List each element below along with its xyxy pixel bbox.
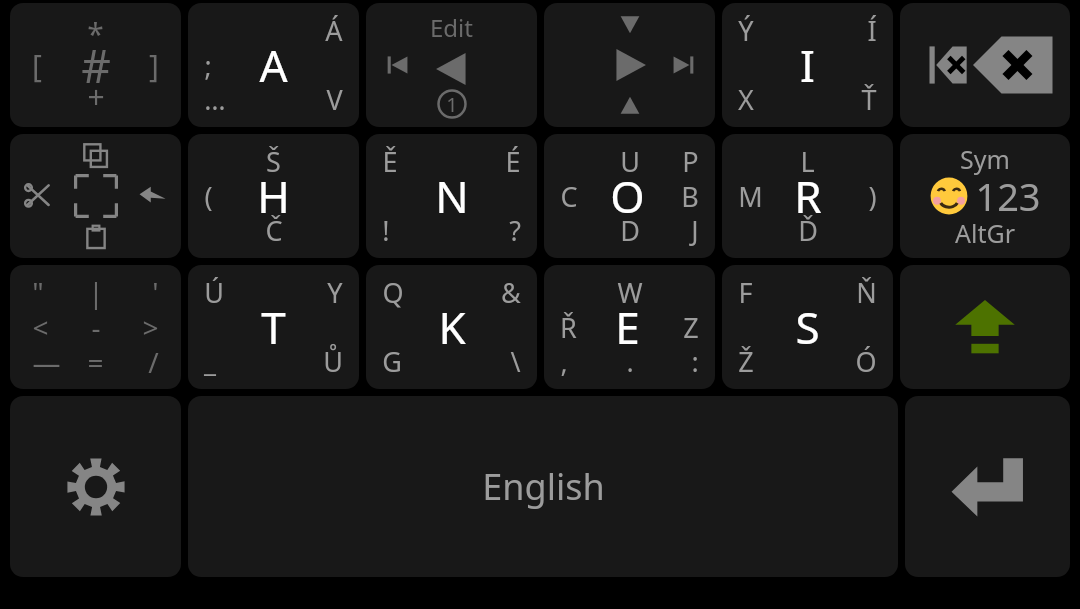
staticText: Ó bbox=[855, 343, 877, 380]
staticText: English bbox=[482, 462, 605, 511]
staticText: N bbox=[435, 166, 469, 226]
staticText: O bbox=[610, 166, 645, 226]
staticText: F bbox=[738, 274, 753, 311]
staticText: V bbox=[326, 81, 343, 118]
staticText: S bbox=[795, 297, 820, 357]
staticText: , bbox=[560, 343, 568, 380]
staticText: : bbox=[691, 343, 699, 380]
staticText: J bbox=[691, 212, 699, 249]
staticText: ] bbox=[149, 45, 159, 86]
button[interactable]: O bbox=[544, 134, 715, 258]
staticText: ' bbox=[152, 273, 159, 311]
staticText: Š bbox=[266, 143, 281, 180]
staticText: Á bbox=[325, 12, 343, 49]
button[interactable]: R bbox=[722, 134, 893, 258]
staticText: > bbox=[142, 308, 159, 346]
button[interactable]: Symbols and numbers bbox=[900, 134, 1070, 258]
staticText: I bbox=[800, 35, 815, 95]
staticText: 1 bbox=[446, 91, 458, 118]
staticText: A bbox=[259, 35, 288, 95]
staticText: W bbox=[617, 274, 643, 311]
staticText: G bbox=[382, 343, 402, 380]
button[interactable]: Clipboard bbox=[10, 134, 181, 258]
staticText: ! bbox=[382, 212, 390, 249]
staticText: ( bbox=[204, 178, 213, 215]
staticText: X bbox=[738, 81, 754, 118]
staticText: L bbox=[800, 143, 815, 180]
staticText: _ bbox=[204, 343, 216, 380]
staticText: Ň bbox=[856, 274, 877, 311]
button[interactable]: E bbox=[544, 265, 715, 389]
staticText: | bbox=[88, 273, 104, 311]
staticText: É bbox=[505, 143, 521, 180]
staticText: E bbox=[615, 297, 640, 357]
staticText: & bbox=[501, 274, 521, 311]
staticText: B bbox=[681, 178, 699, 215]
button[interactable]: Shift bbox=[900, 265, 1070, 389]
staticText: AltGr bbox=[955, 216, 1015, 250]
button[interactable]: H bbox=[188, 134, 359, 258]
staticText: = bbox=[87, 343, 104, 381]
button[interactable]: Cursor right bbox=[544, 3, 715, 127]
staticText: H bbox=[257, 166, 290, 226]
staticText: Ť bbox=[861, 81, 877, 118]
staticText: Ř bbox=[560, 309, 577, 346]
staticText: . bbox=[626, 343, 634, 380]
button[interactable]: S bbox=[722, 265, 893, 389]
staticText: Ď bbox=[798, 212, 818, 249]
button[interactable]: Enter bbox=[905, 396, 1070, 577]
staticText: # bbox=[81, 34, 111, 97]
staticText: Edit bbox=[430, 11, 473, 44]
staticText: Ž bbox=[738, 343, 754, 380]
button[interactable]: Settings bbox=[10, 396, 181, 577]
button[interactable]: Space - English bbox=[188, 396, 898, 577]
staticText: Ú bbox=[204, 274, 224, 311]
staticText: T bbox=[261, 297, 286, 357]
staticText: ; bbox=[204, 47, 212, 84]
staticText: Y bbox=[327, 274, 343, 311]
button[interactable]: T bbox=[188, 265, 359, 389]
staticText: Č bbox=[265, 212, 283, 249]
button[interactable]: N bbox=[366, 134, 537, 258]
staticText: Ů bbox=[323, 343, 343, 380]
staticText: K bbox=[438, 297, 466, 357]
staticText: Ě bbox=[382, 143, 398, 180]
staticText: U bbox=[620, 143, 640, 180]
staticText: D bbox=[620, 212, 640, 249]
button[interactable]: K bbox=[366, 265, 537, 389]
button[interactable]: Hash bbox=[10, 3, 181, 127]
button[interactable]: Punctuation bbox=[10, 265, 181, 389]
staticText: * bbox=[87, 13, 104, 54]
staticText: - bbox=[91, 308, 101, 346]
staticText: / bbox=[148, 343, 159, 381]
staticText: \ bbox=[510, 343, 521, 380]
staticText: ) bbox=[868, 178, 877, 215]
staticText: M bbox=[738, 178, 763, 215]
staticText: [ bbox=[32, 45, 42, 86]
staticText: ? bbox=[509, 212, 521, 249]
staticText: + bbox=[87, 76, 105, 117]
staticText: Sym bbox=[960, 142, 1010, 176]
staticText: … bbox=[204, 81, 226, 118]
staticText: R bbox=[794, 166, 822, 226]
button[interactable]: I bbox=[722, 3, 893, 127]
staticText: < bbox=[32, 308, 49, 346]
staticText: 123 bbox=[975, 170, 1041, 222]
staticText: C bbox=[560, 178, 578, 215]
staticText: Ý bbox=[738, 12, 754, 49]
staticText: " bbox=[32, 273, 44, 311]
staticText: Z bbox=[683, 309, 699, 346]
staticText: P bbox=[682, 143, 699, 180]
staticText: Í bbox=[867, 12, 877, 49]
button[interactable]: A bbox=[188, 3, 359, 127]
staticText: Q bbox=[382, 274, 404, 311]
staticText: — bbox=[32, 343, 61, 381]
button[interactable]: Backspace bbox=[900, 3, 1070, 127]
button[interactable]: Edit and cursor left bbox=[366, 3, 537, 127]
